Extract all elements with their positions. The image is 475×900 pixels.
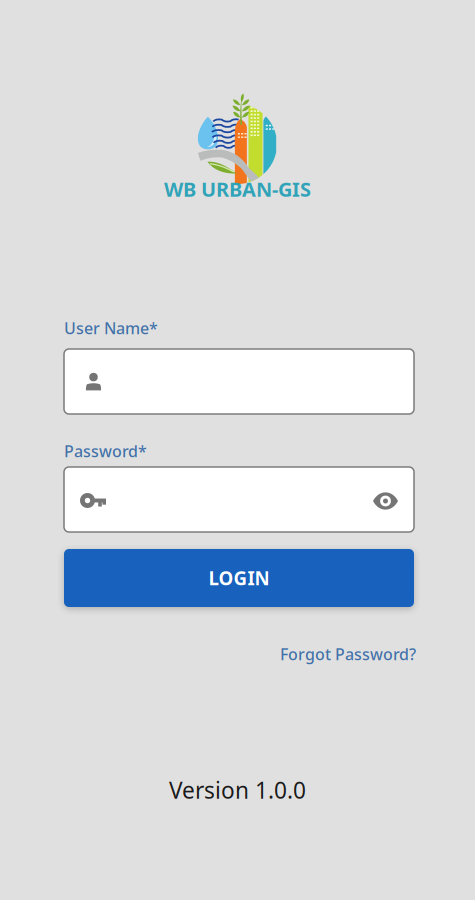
staticText: Forgot Password? <box>280 643 416 665</box>
staticText: LOGIN <box>208 566 269 590</box>
button[interactable]: Show password <box>365 484 406 518</box>
staticText: Password* <box>64 440 147 462</box>
staticText: User Name* <box>64 317 158 339</box>
button[interactable]: LOGIN <box>64 549 414 607</box>
button[interactable]: Forgot Password? <box>64 643 416 665</box>
staticText: Version 1.0.0 <box>169 775 306 805</box>
staticText: WB URBAN-GIS <box>164 176 311 202</box>
